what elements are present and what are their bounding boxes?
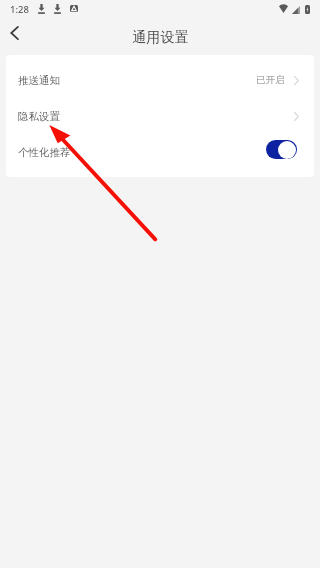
- button[interactable]: 个性化推荐: [6, 134, 314, 170]
- staticText: 通用设置: [132, 28, 189, 46]
- staticText: 已开启: [256, 74, 285, 86]
- staticText: 推送通知: [18, 74, 60, 87]
- staticText: 隐私设置: [18, 110, 60, 123]
- button[interactable]: Personalized recommendation toggle: [266, 140, 297, 159]
- staticText: 个性化推荐: [18, 146, 71, 159]
- button[interactable]: Back: [0, 17, 28, 48]
- button[interactable]: 推送通知: [6, 62, 314, 98]
- staticText: 1:28: [10, 3, 29, 16]
- button[interactable]: 隐私设置: [6, 98, 314, 134]
